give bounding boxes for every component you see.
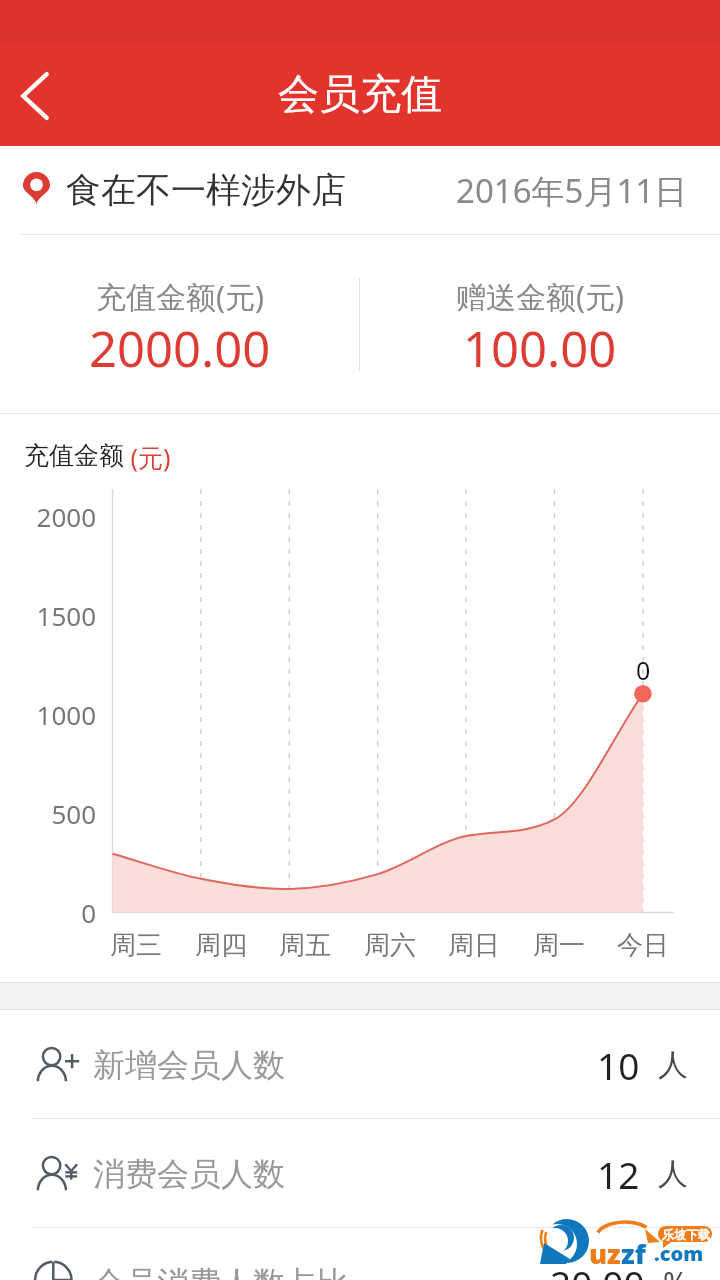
button[interactable]: 消费会员人数 <box>0 1119 720 1228</box>
staticText: 10 <box>597 1040 640 1090</box>
staticText: uz <box>589 1235 621 1272</box>
staticText: 周一 <box>533 929 585 962</box>
staticText: 20.00 <box>550 1258 645 1280</box>
staticText: zf <box>621 1235 646 1272</box>
staticText: 周三 <box>110 929 162 962</box>
staticText: 2000.00 <box>89 315 271 382</box>
staticText: (元) <box>124 440 171 474</box>
staticText: 人 <box>658 1046 688 1084</box>
staticText: .com <box>654 1240 704 1267</box>
button[interactable]: 新增会员人数 <box>0 1010 720 1119</box>
staticText: 100.00 <box>463 315 617 382</box>
staticText: 1500 <box>36 598 96 633</box>
staticText: % <box>663 1262 688 1280</box>
staticText: 赠送金额(元) <box>456 276 624 317</box>
staticText: 0 <box>636 653 651 687</box>
staticText: 会员充值 <box>278 69 442 121</box>
staticText: 周六 <box>364 929 416 962</box>
button[interactable]: 食在不一样涉外店 <box>0 146 720 234</box>
button[interactable]: 会员消费人数占比 <box>0 1228 720 1280</box>
staticText: 新增会员人数 <box>93 1045 285 1085</box>
staticText: 充值金额(元) <box>96 276 264 317</box>
staticText: 12 <box>597 1149 640 1199</box>
staticText: 消费会员人数 <box>93 1154 285 1194</box>
staticText: 0 <box>81 895 96 930</box>
staticText: 人 <box>658 1155 688 1193</box>
staticText: 1000 <box>36 697 96 732</box>
staticText: 食在不一样涉外店 <box>66 168 346 212</box>
staticText: 会员消费人数占比 <box>93 1263 349 1280</box>
staticText: 2000 <box>36 499 96 534</box>
staticText: 周日 <box>448 929 500 962</box>
staticText: 周五 <box>279 929 331 962</box>
button[interactable]: Back <box>0 45 70 146</box>
staticText: 2016年5月11日 <box>456 168 688 213</box>
staticText: 今日 <box>617 929 669 962</box>
staticText: 周四 <box>195 929 247 962</box>
staticText: 500 <box>51 796 96 831</box>
staticText: 充值金额 <box>24 440 124 471</box>
staticText: 乐坡下载 <box>662 1227 710 1242</box>
